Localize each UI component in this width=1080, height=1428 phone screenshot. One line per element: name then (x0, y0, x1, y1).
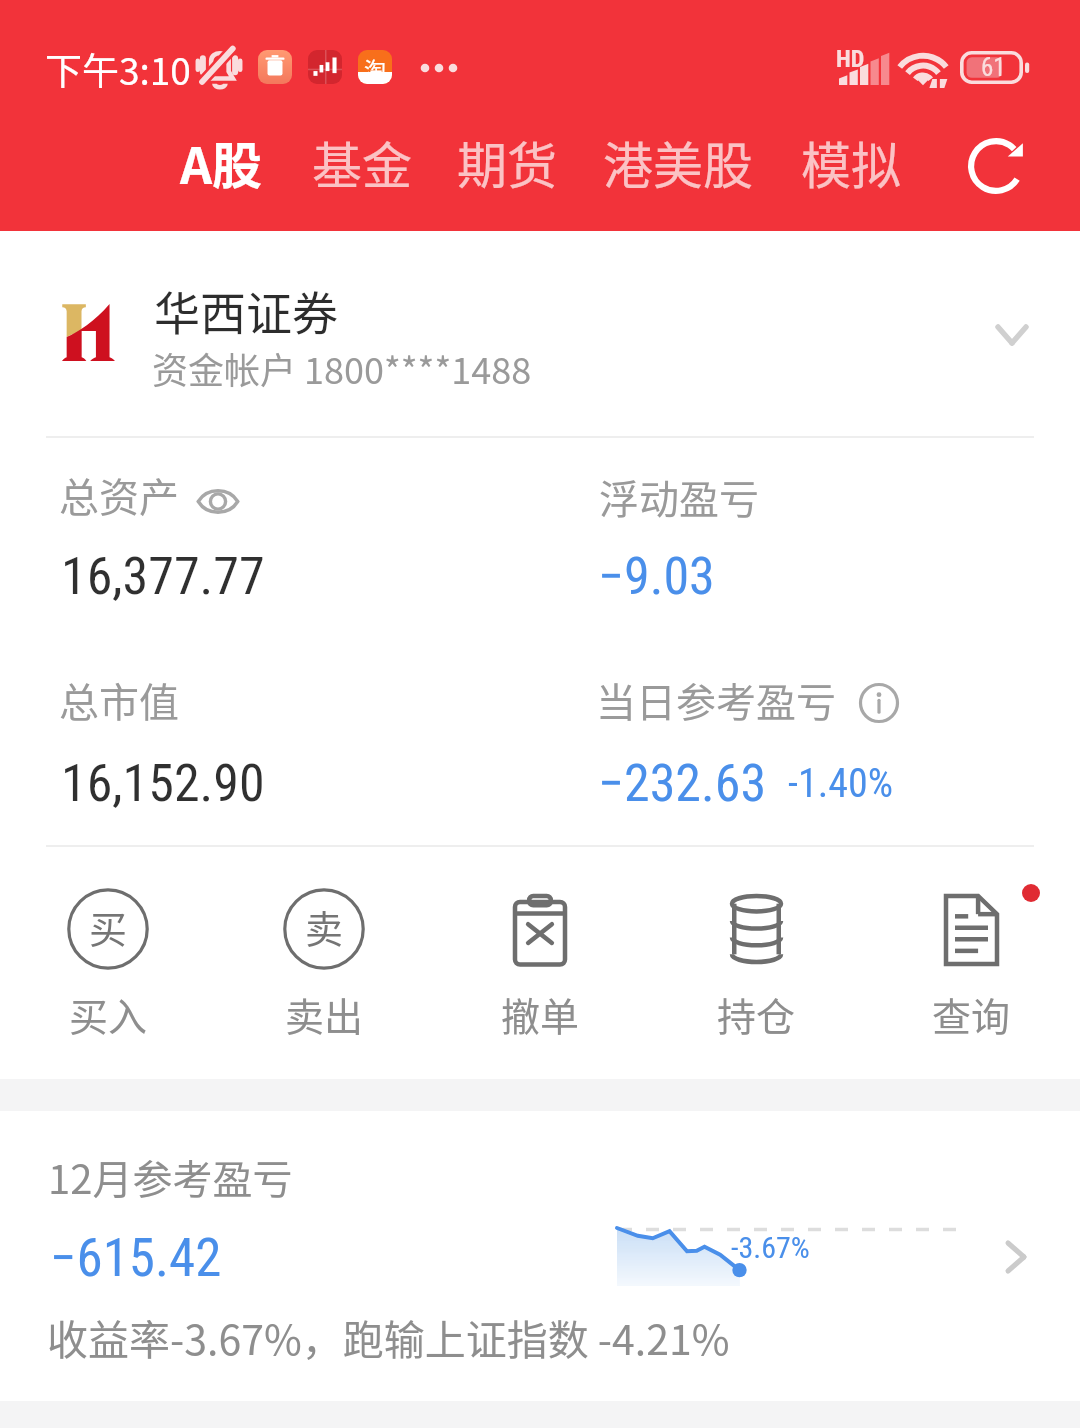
staticText: 61 (981, 53, 1006, 82)
staticText: 查询 (932, 986, 1011, 1042)
staticText: 淘 (364, 52, 387, 84)
staticText: 16,152.90 (61, 753, 265, 814)
staticText: 卖 (305, 899, 344, 954)
button[interactable]: 查询 (863, 865, 1079, 1060)
staticText: 12月参考盈亏 (48, 1148, 293, 1206)
staticText: 持仓 (717, 986, 796, 1042)
button[interactable]: 期货 (441, 122, 573, 202)
button[interactable]: Refresh (968, 138, 1024, 194)
staticText: 买 (89, 899, 128, 954)
staticText: 总资产 (59, 466, 179, 524)
staticText: −615.42 (50, 1227, 222, 1289)
staticText: 基金 (312, 126, 412, 198)
staticText: 收益率-3.67%，跑输上证指数 -4.21% (47, 1307, 730, 1366)
button[interactable]: 基金 (296, 122, 428, 202)
staticText: 下午3:10 (45, 42, 191, 96)
staticText: 卖出 (285, 986, 364, 1042)
staticText: 模拟 (801, 126, 901, 198)
staticText: −9.03 (598, 546, 715, 607)
button[interactable]: 卖 (216, 865, 432, 1060)
button[interactable]: A股 (164, 122, 279, 202)
button[interactable]: 12月参考盈亏 (0, 1111, 1080, 1401)
button[interactable]: 港美股 (587, 122, 769, 202)
button[interactable]: 持仓 (648, 865, 864, 1060)
staticText: 16,377.77 (61, 546, 265, 607)
button[interactable]: Info (858, 682, 900, 724)
staticText: -1.40% (788, 760, 894, 807)
staticText: 撤单 (501, 986, 580, 1042)
staticText: A股 (180, 126, 263, 198)
staticText: 买入 (69, 986, 148, 1042)
button[interactable]: Toggle asset visibility (197, 486, 239, 517)
button[interactable]: 华西证券 (0, 231, 1080, 436)
staticText: 总市值 (59, 671, 179, 729)
button[interactable]: 买 (0, 865, 216, 1060)
staticText: 港美股 (603, 126, 753, 198)
button[interactable]: 模拟 (785, 122, 917, 202)
staticText: 资金帐户 1800****1488 (152, 342, 532, 394)
staticText: 期货 (457, 126, 557, 198)
button[interactable]: 撤单 (432, 865, 648, 1060)
staticText: 浮动盈亏 (599, 468, 759, 526)
other: Switch account (986, 313, 1038, 353)
staticText: 当日参考盈亏 (596, 671, 836, 729)
staticText: −232.63 (598, 753, 767, 814)
staticText: HD (836, 45, 865, 73)
staticText: -3.67% (731, 1230, 810, 1265)
staticText: 华西证券 (154, 277, 338, 344)
